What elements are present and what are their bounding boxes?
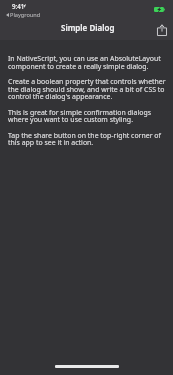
staticText: the dialog should show, and write a bit … xyxy=(8,86,165,94)
staticText: Create a boolean property that controls … xyxy=(8,78,166,86)
button[interactable]: Playground xyxy=(6,11,41,19)
staticText: control the dialog's appearance. xyxy=(8,93,113,101)
staticText: where you want to use custom styling. xyxy=(8,116,133,124)
staticText: This is great for simple confirmation di… xyxy=(8,109,152,117)
staticText: component to create a really simple dial… xyxy=(8,63,149,71)
staticText: In NativeScript, you can use an Absolute… xyxy=(8,55,161,63)
staticText: Simple Dialog xyxy=(61,22,115,33)
button[interactable]: Share xyxy=(153,21,171,39)
staticText: 9:41 xyxy=(12,2,25,10)
staticText: Tap the share button on the top-right co… xyxy=(8,132,161,140)
staticText: this app to see it in action. xyxy=(8,139,94,147)
staticText: Playground xyxy=(10,11,41,19)
